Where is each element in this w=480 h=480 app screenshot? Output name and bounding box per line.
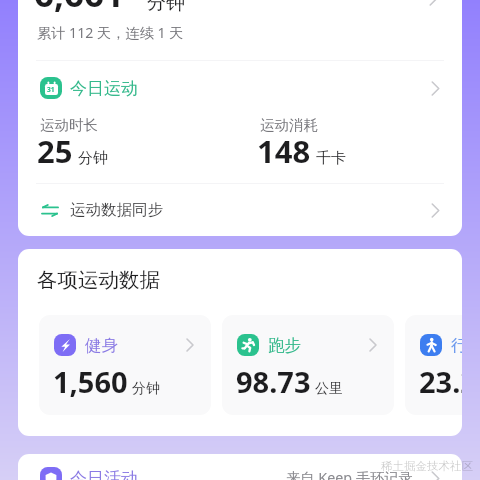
- button[interactable]: 31: [18, 67, 462, 109]
- staticText: 25: [37, 130, 73, 172]
- staticText: 来自 Keep 手环记录: [286, 468, 413, 480]
- staticText: 健身: [85, 335, 118, 356]
- staticText: 23.21: [419, 362, 462, 401]
- staticText: 6,661: [34, 0, 125, 18]
- staticText: 分钟: [78, 149, 108, 168]
- staticText: 运动时长: [40, 116, 98, 134]
- staticText: 今日活动: [70, 468, 138, 480]
- staticText: 行走: [451, 335, 462, 356]
- staticText: 31: [47, 85, 55, 94]
- button[interactable]: More: [423, 0, 443, 6]
- staticText: 1,560: [53, 362, 128, 401]
- staticText: 今日运动: [70, 78, 138, 99]
- staticText: 累计 112 天，连续 1 天: [37, 23, 184, 42]
- staticText: 公里: [315, 380, 343, 398]
- staticText: 运动消耗: [260, 116, 318, 134]
- button[interactable]: 行走: [405, 315, 462, 415]
- staticText: 98.73: [236, 362, 311, 401]
- button[interactable]: 健身: [39, 315, 211, 415]
- button[interactable]: 跑步: [222, 315, 394, 415]
- staticText: 运动数据同步: [70, 200, 163, 220]
- staticText: 跑步: [268, 335, 301, 356]
- staticText: 千卡: [316, 149, 346, 168]
- button[interactable]: 今日活动: [18, 457, 462, 480]
- staticText: 稀土掘金技术社区: [381, 459, 473, 473]
- staticText: 148: [257, 130, 311, 172]
- staticText: 分钟: [132, 380, 160, 398]
- button[interactable]: 运动数据同步: [18, 184, 462, 236]
- staticText: 各项运动数据: [37, 267, 160, 293]
- staticText: 分钟: [147, 0, 185, 15]
